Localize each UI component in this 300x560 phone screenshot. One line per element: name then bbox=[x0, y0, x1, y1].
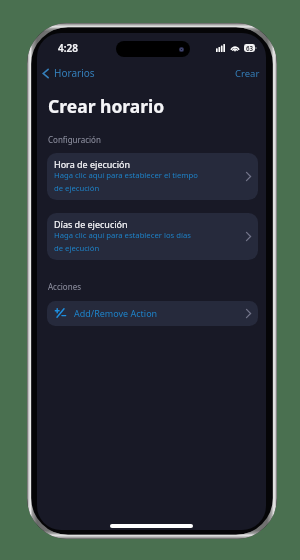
button[interactable]: Add/Remove Action bbox=[47, 301, 258, 326]
staticText: Crear horario bbox=[48, 94, 165, 118]
staticText: Configuración bbox=[48, 134, 101, 145]
staticText: 4:28 bbox=[58, 41, 78, 55]
staticText: 63 bbox=[246, 44, 254, 52]
button[interactable]: Días de ejecución bbox=[47, 213, 258, 260]
staticText: Haga clic aquí para establecer el tiempo… bbox=[54, 170, 198, 193]
button[interactable]: Horarios bbox=[39, 64, 99, 82]
button[interactable]: Hora de ejecución bbox=[47, 153, 258, 200]
staticText: Días de ejecución bbox=[54, 218, 128, 230]
staticText: Hora de ejecución bbox=[54, 158, 130, 170]
staticText: Add/Remove Action bbox=[74, 307, 158, 319]
staticText: Acciones bbox=[48, 281, 81, 292]
button[interactable]: Crear bbox=[233, 65, 262, 82]
staticText: Horarios bbox=[54, 66, 95, 80]
staticText: Haga clic aquí para establecer los días … bbox=[54, 230, 191, 253]
